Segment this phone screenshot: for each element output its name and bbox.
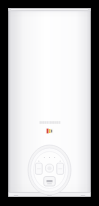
button[interactable]: Wall mounted boiler product image [0, 0, 99, 206]
